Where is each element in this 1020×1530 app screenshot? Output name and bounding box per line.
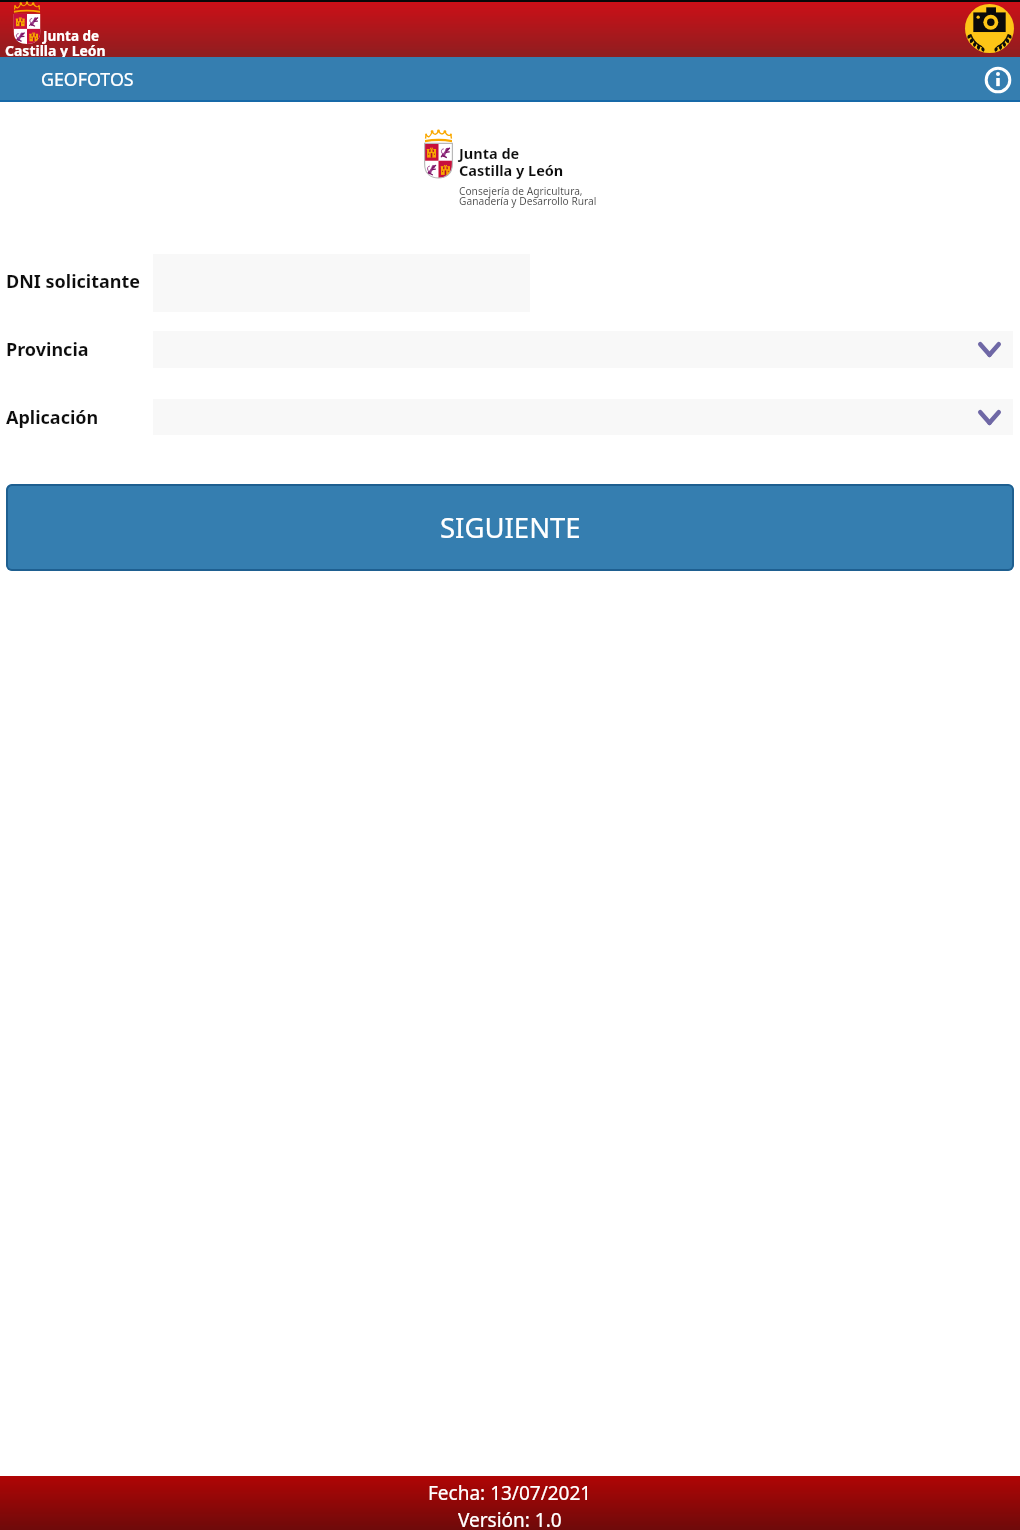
button[interactable]: Abrir cámara Geofotos	[965, 4, 1014, 53]
staticText: Ganadería y Desarrollo Rural	[459, 194, 597, 208]
button[interactable]: Información	[977, 59, 1019, 101]
staticText: Castilla y León	[5, 41, 106, 60]
staticText: Consejería de Agricultura,	[459, 184, 583, 198]
button[interactable]: SIGUIENTE	[6, 484, 1014, 571]
staticText: Castilla y León	[459, 160, 564, 180]
staticText: Fecha: 13/07/2021	[428, 1480, 592, 1506]
staticText: Provincia	[6, 337, 89, 362]
staticText: SIGUIENTE	[440, 509, 581, 546]
staticText: Aplicación	[6, 405, 99, 430]
staticText: Versión: 1.0	[458, 1507, 562, 1530]
button[interactable]	[153, 331, 1013, 368]
staticText: Junta de	[459, 143, 520, 163]
button[interactable]	[153, 399, 1013, 435]
staticText: GEOFOTOS	[41, 67, 134, 91]
staticText: Junta de	[43, 27, 100, 45]
staticText: DNI solicitante	[6, 269, 141, 294]
